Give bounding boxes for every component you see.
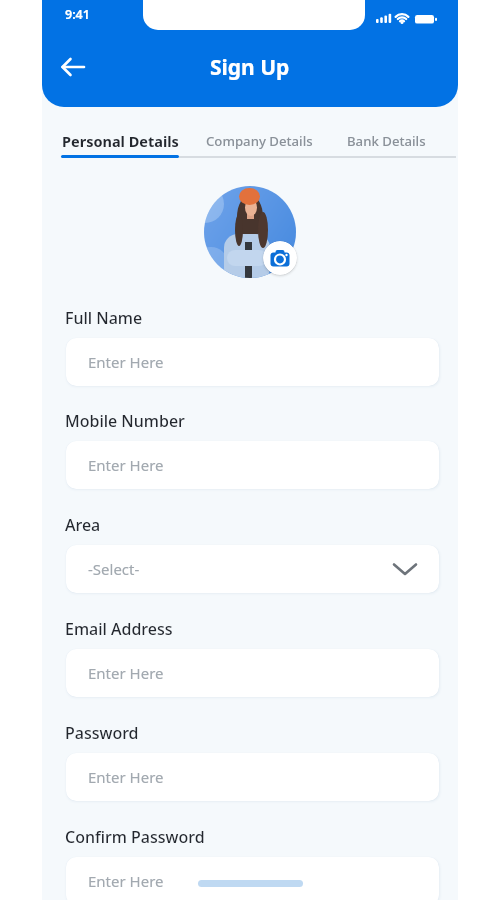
button[interactable] xyxy=(263,241,297,275)
button[interactable]: Enter Here xyxy=(66,857,439,900)
button[interactable]: Personal Details xyxy=(61,128,179,154)
button[interactable]: Enter Here xyxy=(66,338,439,386)
staticText: Password xyxy=(65,722,139,744)
staticText: 9:41 xyxy=(65,6,90,23)
staticText: Company Details xyxy=(206,132,313,150)
staticText: Sign Up xyxy=(210,53,290,82)
staticText: Bank Details xyxy=(347,132,426,150)
staticText: Enter Here xyxy=(88,767,164,787)
button[interactable] xyxy=(204,186,296,278)
staticText: Area xyxy=(65,514,101,536)
staticText: -Select- xyxy=(88,559,140,579)
staticText: Full Name xyxy=(65,307,143,329)
button[interactable]: -Select- xyxy=(66,545,439,593)
button[interactable]: Enter Here xyxy=(66,649,439,697)
button[interactable]: Bank Details xyxy=(327,128,445,154)
staticText: Enter Here xyxy=(88,455,164,475)
staticText: Enter Here xyxy=(88,871,164,891)
staticText: Email Address xyxy=(65,618,173,640)
button[interactable] xyxy=(54,50,92,84)
button[interactable]: Company Details xyxy=(200,128,318,154)
staticText: Mobile Number xyxy=(65,410,185,432)
button[interactable]: Enter Here xyxy=(66,753,439,801)
staticText: Personal Details xyxy=(62,131,179,151)
button[interactable]: Enter Here xyxy=(66,441,439,489)
staticText: Enter Here xyxy=(88,352,164,372)
staticText: Enter Here xyxy=(88,663,164,683)
staticText: Confirm Password xyxy=(65,826,205,848)
